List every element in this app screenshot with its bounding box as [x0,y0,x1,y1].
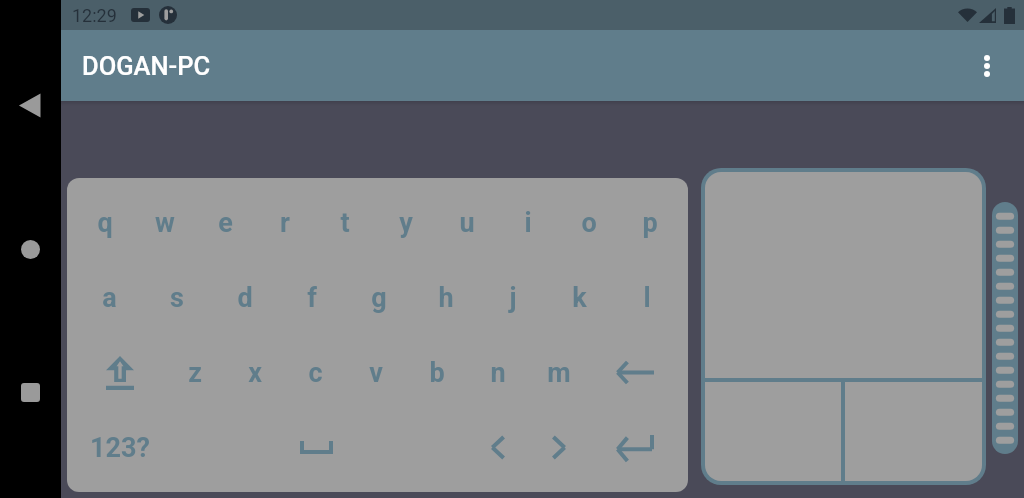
button[interactable]: b [406,335,467,410]
staticText: r [280,207,290,239]
button[interactable]: y [375,186,436,260]
staticText: g [371,282,387,314]
button[interactable]: f [278,260,345,335]
button[interactable]: Recent apps [15,377,45,407]
staticText: h [438,282,454,314]
button[interactable]: Shift [75,335,165,410]
button[interactable]: k [546,260,613,335]
button[interactable]: Enter [589,410,680,485]
staticText: x [248,357,262,389]
staticText: d [237,282,253,314]
staticText: u [459,207,475,239]
button[interactable]: l [613,260,680,335]
button[interactable]: o [558,186,619,260]
button[interactable]: i [497,186,558,260]
staticText: 123? [90,432,150,464]
button[interactable]: s [143,260,211,335]
staticText: t [340,207,350,239]
button[interactable]: More options [967,46,1007,86]
staticText: s [170,282,184,314]
button[interactable]: q [75,186,135,260]
button[interactable]: Right click [845,382,982,481]
staticText: o [581,207,597,239]
staticText: b [429,357,445,389]
staticText: j [509,282,517,314]
button[interactable]: w [135,186,195,260]
staticText: y [399,207,413,239]
staticText: a [102,282,117,314]
button[interactable]: r [255,186,315,260]
staticText: p [642,207,658,239]
button[interactable]: d [211,260,278,335]
button[interactable]: p [619,186,680,260]
button[interactable]: n [467,335,528,410]
button[interactable]: Right [528,410,589,485]
button[interactable]: x [225,335,285,410]
staticText: z [188,357,202,389]
button[interactable]: h [412,260,479,335]
button[interactable]: Space [165,410,467,485]
staticText: i [524,207,532,239]
button[interactable]: g [345,260,412,335]
staticText: l [643,282,651,314]
staticText: w [155,207,175,239]
staticText: e [218,207,233,239]
staticText: n [490,357,506,389]
staticText: v [369,357,383,389]
button[interactable]: Back [15,90,45,120]
button[interactable]: v [345,335,406,410]
button[interactable]: Home [15,234,45,264]
button[interactable]: e [195,186,255,260]
staticText: DOGAN-PC [82,51,211,81]
button[interactable]: m [528,335,589,410]
button[interactable]: t [315,186,375,260]
button[interactable]: Scroll [992,202,1018,454]
button[interactable]: Backspace [589,335,680,410]
staticText: q [97,207,113,239]
button[interactable]: z [165,335,225,410]
staticText: k [572,282,587,314]
staticText: m [547,357,571,389]
staticText: c [308,357,323,389]
button[interactable]: Left click [705,382,841,481]
button[interactable]: c [285,335,345,410]
button[interactable]: 123? [75,410,165,485]
button[interactable]: a [75,260,143,335]
button[interactable]: u [436,186,497,260]
staticText: 12:29 [72,5,117,26]
button[interactable]: j [479,260,546,335]
button[interactable]: Left [467,410,528,485]
staticText: f [307,282,317,314]
